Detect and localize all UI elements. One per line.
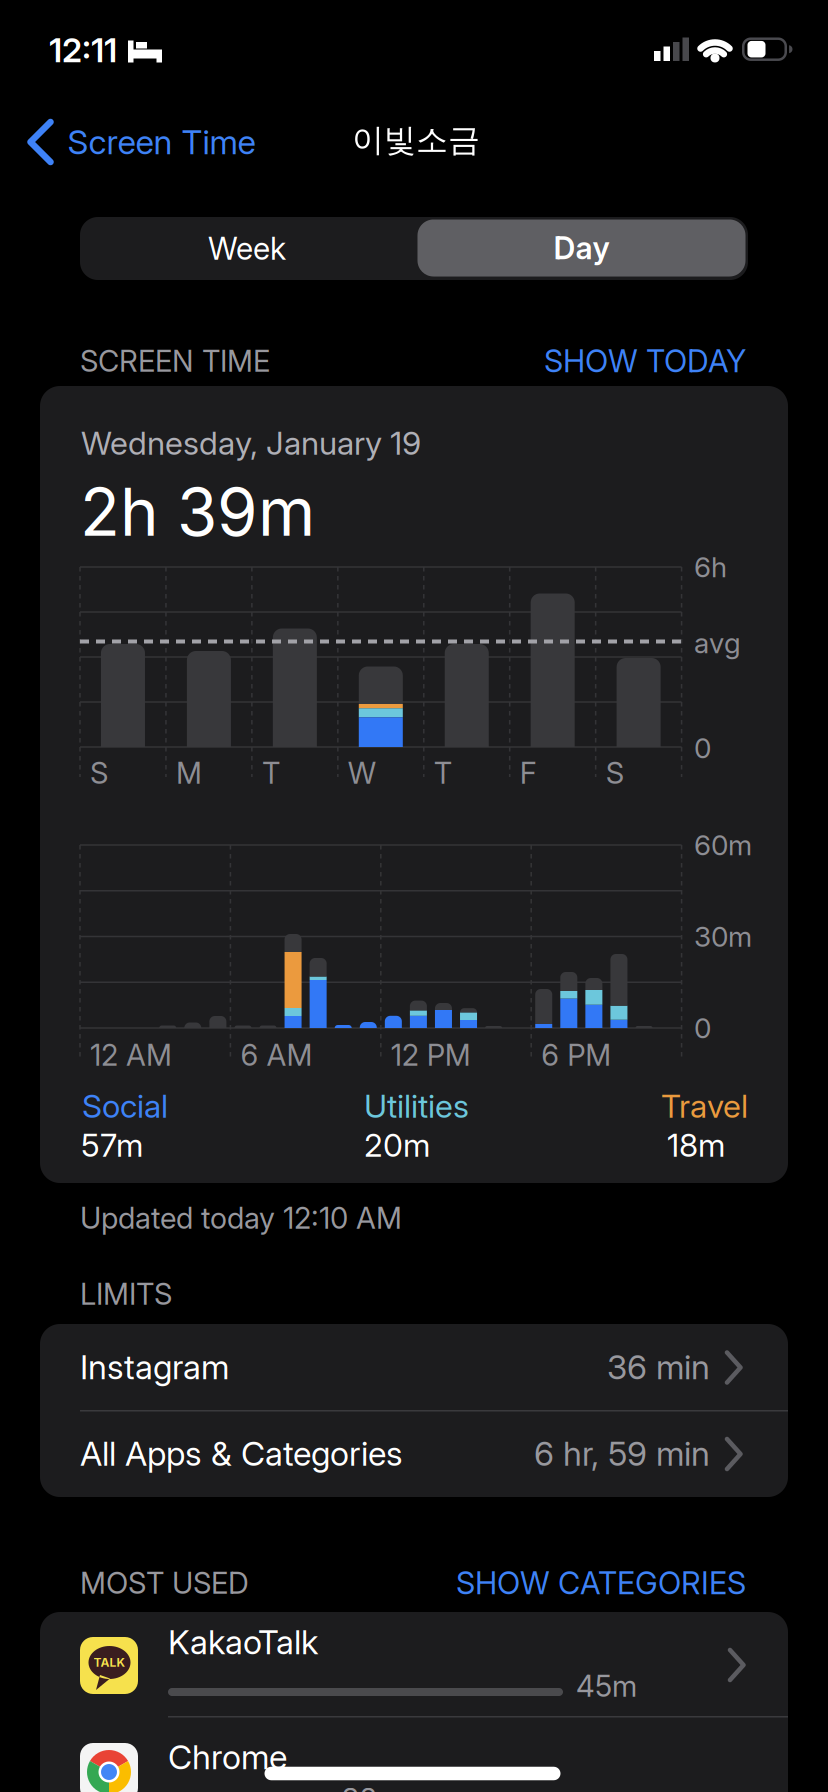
- staticText: 6 PM: [541, 1038, 611, 1072]
- staticText: 이빛소금: [352, 120, 480, 160]
- button[interactable]: Chrome: [40, 1717, 788, 1792]
- button[interactable]: Instagram: [40, 1324, 788, 1410]
- staticText: Day: [553, 230, 609, 266]
- staticText: 12:11: [49, 30, 117, 70]
- staticText: 0: [694, 731, 711, 764]
- button[interactable]: SHOW TODAY: [446, 343, 746, 379]
- staticText: Travel: [661, 1087, 748, 1125]
- button[interactable]: SHOW CATEGORIES: [326, 1565, 746, 1601]
- staticText: LIMITS: [80, 1277, 172, 1311]
- staticText: 45m: [576, 1669, 637, 1703]
- staticText: TALK: [93, 1655, 125, 1670]
- staticText: SHOW TODAY: [544, 343, 746, 379]
- staticText: 20m: [364, 1126, 430, 1164]
- button[interactable]: Back: [28, 120, 255, 164]
- staticText: S: [90, 756, 108, 790]
- staticText: Screen Time: [67, 122, 255, 162]
- staticText: 6h: [694, 550, 727, 583]
- staticText: SCREEN TIME: [80, 344, 270, 378]
- staticText: F: [520, 756, 537, 790]
- staticText: S: [606, 756, 624, 790]
- staticText: 30m: [694, 920, 752, 953]
- staticText: T: [262, 756, 280, 790]
- staticText: 2h 39m: [80, 473, 315, 551]
- staticText: Social: [82, 1087, 168, 1125]
- staticText: All Apps & Categories: [80, 1434, 403, 1473]
- staticText: MOST USED: [80, 1566, 249, 1600]
- button[interactable]: Day: [417, 219, 745, 276]
- staticText: Week: [208, 230, 286, 267]
- staticText: SHOW CATEGORIES: [456, 1565, 746, 1601]
- staticText: Updated today 12:10 AM: [80, 1201, 402, 1235]
- staticText: 0: [694, 1011, 711, 1044]
- staticText: 12 PM: [391, 1038, 471, 1072]
- staticText: 38m: [341, 1782, 402, 1792]
- staticText: 60m: [694, 828, 752, 861]
- staticText: Instagram: [80, 1347, 229, 1387]
- staticText: 6 hr, 59 min: [534, 1434, 710, 1473]
- staticText: Wednesday, January 19: [81, 424, 421, 462]
- staticText: M: [176, 756, 202, 790]
- button[interactable]: Week: [82, 217, 412, 280]
- staticText: 57m: [81, 1126, 143, 1164]
- staticText: 12 AM: [90, 1038, 172, 1072]
- staticText: 6 AM: [240, 1038, 312, 1072]
- staticText: avg: [694, 626, 741, 659]
- button[interactable]: All Apps & Categories: [40, 1410, 788, 1497]
- staticText: 36 min: [607, 1347, 710, 1387]
- staticText: Chrome: [168, 1737, 287, 1777]
- button[interactable]: TALK: [40, 1616, 788, 1716]
- staticText: W: [348, 756, 376, 790]
- staticText: 18m: [667, 1126, 725, 1164]
- staticText: KakaoTalk: [168, 1622, 318, 1662]
- staticText: T: [434, 756, 452, 790]
- staticText: Utilities: [364, 1087, 469, 1125]
